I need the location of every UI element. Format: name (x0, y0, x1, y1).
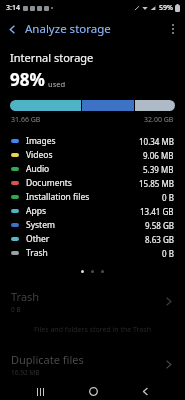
staticText: Apps (26, 205, 140, 217)
staticText: Files and folders stored in the Trash (0, 325, 185, 335)
staticText: Videos (26, 149, 143, 161)
staticText: Duplicate files (11, 352, 84, 367)
staticText: System (26, 219, 145, 231)
staticText: 3:14 (6, 3, 20, 13)
staticText: 31.66 GB (11, 115, 41, 125)
staticText: 98% (10, 68, 45, 91)
staticText: 5.39 MB (143, 164, 174, 175)
button[interactable]: Other (0, 232, 185, 246)
staticText: Images (26, 135, 139, 147)
staticText: 9.06 MB (143, 150, 174, 161)
staticText: Documents (26, 177, 139, 189)
staticText: Analyze storage (25, 21, 111, 37)
staticText: 0 B (162, 192, 174, 203)
button[interactable]: Trash (0, 287, 185, 315)
staticText: 16.92 MB (11, 368, 40, 377)
staticText: 15.85 MB (139, 178, 174, 189)
button[interactable]: Home (80, 383, 106, 400)
button[interactable]: More options (161, 17, 185, 41)
button[interactable]: Duplicate files (0, 349, 185, 379)
button[interactable]: Trash (0, 246, 185, 260)
staticText: used (48, 79, 66, 89)
staticText: 0 B (11, 305, 21, 314)
button[interactable]: System (0, 218, 185, 232)
staticText: 59% (159, 3, 173, 13)
staticText: 8.63 GB (145, 234, 174, 245)
button[interactable]: Images (0, 134, 185, 148)
button[interactable]: Back (132, 383, 158, 400)
staticText: 32.00 GB (144, 115, 174, 125)
button[interactable]: Apps (0, 204, 185, 218)
staticText: Trash (26, 247, 162, 259)
staticText: 0 B (162, 248, 174, 259)
staticText: 10.34 MB (139, 136, 174, 147)
button[interactable]: Audio (0, 162, 185, 176)
staticText: Audio (26, 163, 143, 175)
staticText: Other (26, 233, 145, 245)
button[interactable]: Installation files (0, 190, 185, 204)
other: Open (163, 359, 174, 370)
button[interactable]: Back (0, 17, 24, 41)
staticText: 9.58 GB (145, 220, 174, 231)
staticText: Internal storage (10, 50, 94, 65)
button[interactable]: Recents (27, 383, 53, 400)
staticText: 13.41 GB (140, 206, 174, 217)
other: Open (163, 296, 174, 307)
staticText: Installation files (26, 191, 162, 203)
button[interactable]: Videos (0, 148, 185, 162)
staticText: Trash (11, 289, 40, 304)
button[interactable]: Documents (0, 176, 185, 190)
